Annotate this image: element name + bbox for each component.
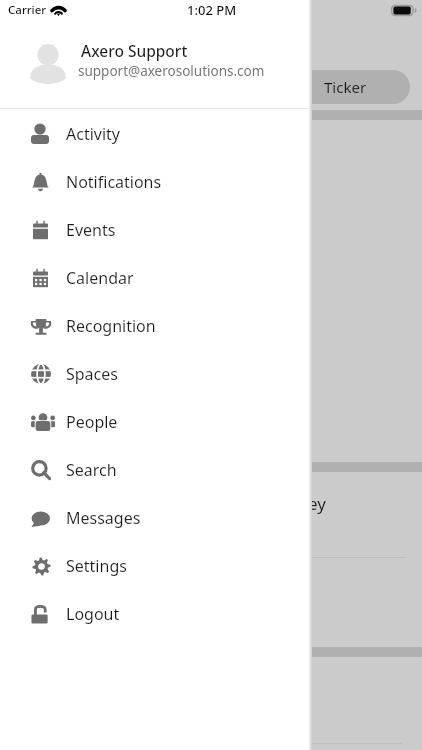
button[interactable]: Settings	[0, 542, 309, 590]
staticText: ey	[308, 492, 326, 515]
staticText: Activity	[66, 123, 121, 145]
button[interactable]: Notifications	[0, 158, 309, 206]
button[interactable]: Messages	[0, 494, 309, 542]
staticText: Axero Support	[81, 40, 188, 61]
button[interactable]: Logout	[0, 590, 309, 638]
staticText: Spaces	[66, 363, 118, 385]
staticText: Calendar	[66, 267, 134, 289]
button[interactable]: Spaces	[0, 350, 309, 398]
button[interactable]: Ticker	[240, 70, 410, 104]
staticText: Notifications	[66, 171, 162, 193]
staticText: Ticker	[324, 77, 367, 97]
button[interactable]: Activity	[0, 110, 309, 158]
staticText: Carrier	[8, 2, 47, 18]
staticText: 1:02 PM	[187, 1, 237, 19]
staticText: Events	[66, 219, 116, 241]
staticText: Messages	[66, 507, 141, 529]
button[interactable]: People	[0, 398, 309, 446]
button[interactable]: Search	[0, 446, 309, 494]
button[interactable]: Events	[0, 206, 309, 254]
staticText: Recognition	[66, 315, 156, 337]
staticText: People	[66, 411, 118, 433]
button[interactable]: Recognition	[0, 302, 309, 350]
staticText: support@axerosolutions.com	[78, 62, 265, 80]
button[interactable]: Calendar	[0, 254, 309, 302]
staticText: Search	[66, 459, 117, 481]
staticText: Logout	[66, 603, 120, 625]
staticText: Settings	[66, 555, 127, 577]
